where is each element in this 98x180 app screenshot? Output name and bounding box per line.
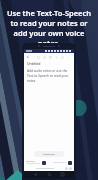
staticText: Use the Text-To-Speech to read your note… — [5, 8, 93, 48]
button[interactable]: Save — [60, 55, 65, 60]
button[interactable]: Home — [47, 172, 52, 177]
button[interactable]: Record — [42, 161, 46, 165]
button[interactable]: Share — [54, 55, 59, 60]
button[interactable]: More — [66, 55, 71, 60]
staticText: Add audio notes or use the Text-to-Speec… — [27, 69, 71, 83]
staticText: Untitled — [27, 61, 41, 66]
button[interactable]: Recent apps — [60, 172, 65, 177]
button[interactable]: Undo — [36, 55, 41, 60]
button[interactable]: Back — [33, 172, 38, 177]
button[interactable]: Play — [68, 161, 72, 165]
button[interactable]: Redo — [42, 55, 47, 60]
button[interactable]: Pin — [48, 55, 53, 60]
button[interactable] — [34, 151, 64, 157]
button[interactable]: Back — [26, 55, 30, 59]
